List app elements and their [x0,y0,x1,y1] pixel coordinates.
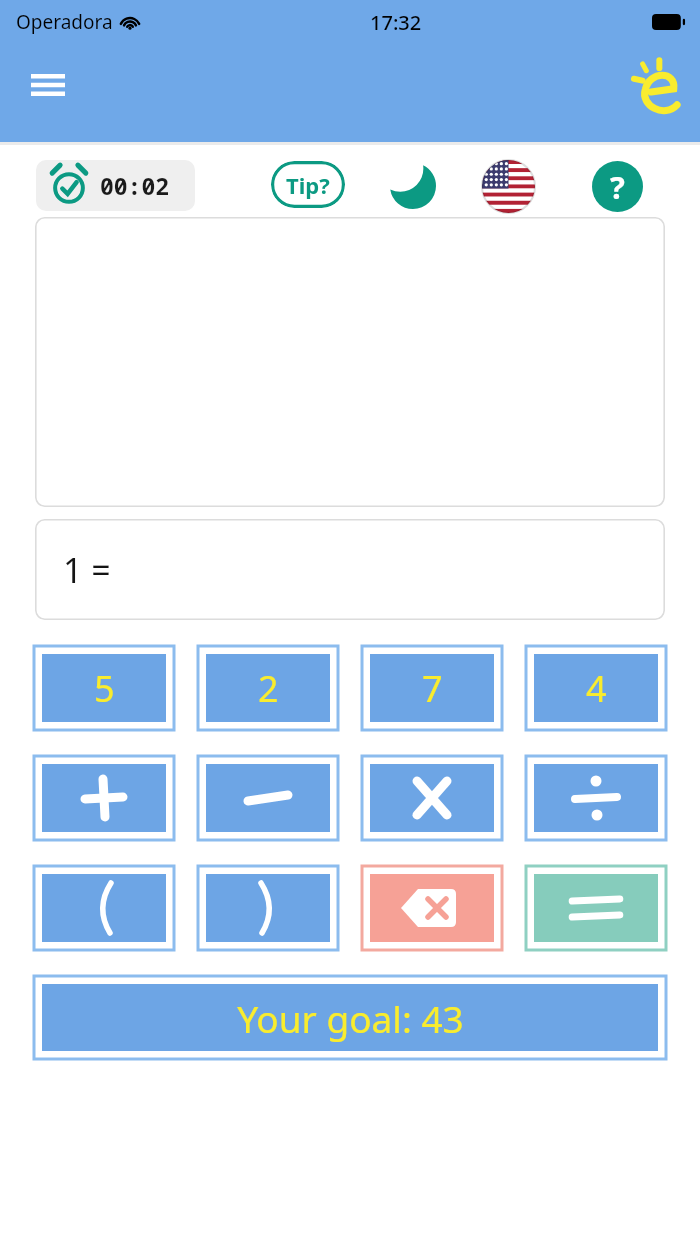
button[interactable]: Logo [624,54,686,116]
button[interactable]: 7 [362,646,502,730]
button[interactable]: 1 = [35,519,665,620]
button[interactable]: Backspace [362,866,502,950]
button[interactable]: 00:02 [36,160,195,211]
staticText: ? [610,166,625,208]
button[interactable]: Help [590,159,644,213]
staticText: 7 [422,664,443,713]
button[interactable]: 4 [526,646,666,730]
button[interactable]: 2 [198,646,338,730]
staticText: 1 = [63,547,111,593]
button[interactable]: Minus [198,756,338,840]
button[interactable]: Open parenthesis [34,866,174,950]
button[interactable]: Your goal: 43 [34,976,666,1059]
button[interactable]: Language [481,159,535,213]
button[interactable]: Equals [526,866,666,950]
button[interactable]: Tip? [271,161,345,208]
button[interactable]: Menu [20,57,76,113]
button[interactable]: Close parenthesis [198,866,338,950]
button[interactable]: 5 [34,646,174,730]
staticText: 2 [258,664,279,713]
staticText: Tip? [286,170,330,200]
button[interactable]: Plus [34,756,174,840]
button[interactable]: Multiply [362,756,502,840]
staticText: 4 [586,664,607,713]
staticText: 00:02 [100,170,170,201]
staticText: Operadora [16,9,113,35]
button[interactable]: Night mode [386,159,440,213]
staticText: Your goal: 43 [237,993,464,1043]
staticText: 17:32 [370,9,422,36]
staticText: 5 [94,664,115,713]
button[interactable] [35,217,665,507]
button[interactable]: Divide [526,756,666,840]
